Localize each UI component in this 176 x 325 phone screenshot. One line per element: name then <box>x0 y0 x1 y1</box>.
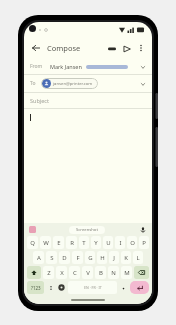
button[interactable]: G <box>85 251 95 264</box>
staticText: C <box>73 269 77 277</box>
button[interactable]: jansen@printer.com <box>41 78 98 89</box>
staticText: F <box>76 254 80 262</box>
button[interactable]: J <box>109 251 119 264</box>
button[interactable]: Q <box>27 236 38 249</box>
staticText: W <box>43 239 49 247</box>
staticText: X <box>60 269 64 277</box>
button[interactable]: N <box>108 266 119 279</box>
staticText: V <box>86 269 90 277</box>
button[interactable]: Y <box>91 236 101 249</box>
staticText: K <box>124 254 128 262</box>
staticText: Z <box>47 269 51 277</box>
staticText: A <box>37 254 41 262</box>
button[interactable]: X <box>56 266 67 279</box>
staticText: N <box>111 269 116 277</box>
staticText: O <box>130 239 135 247</box>
staticText: Screenshot <box>76 227 98 233</box>
button[interactable]: M <box>121 266 132 279</box>
button[interactable] <box>24 109 152 223</box>
staticText: Q <box>30 239 35 247</box>
staticText: H <box>100 254 105 262</box>
button[interactable]: Comma <box>46 281 55 294</box>
staticText: EN · FR · IT <box>84 285 102 290</box>
staticText: jansen@printer.com <box>53 81 93 87</box>
button[interactable]: Send <box>119 41 134 56</box>
staticText: U <box>106 239 111 247</box>
button[interactable]: Settings <box>57 281 66 294</box>
button[interactable]: W <box>40 236 51 249</box>
button[interactable]: F <box>72 251 83 264</box>
staticText: J <box>113 254 115 262</box>
staticText: Mark Jansen <box>50 63 82 70</box>
staticText: T <box>82 239 86 247</box>
button[interactable]: H <box>97 251 107 264</box>
button[interactable]: I <box>115 236 125 249</box>
button[interactable]: V <box>82 266 93 279</box>
staticText: R <box>70 239 74 247</box>
button[interactable]: P <box>139 236 149 249</box>
staticText: ?123 <box>31 285 41 291</box>
staticText: Subject <box>30 97 49 104</box>
button[interactable]: Voice input <box>138 225 147 234</box>
button[interactable]: D <box>59 251 70 264</box>
button[interactable]: Space <box>68 281 117 294</box>
button[interactable]: C <box>69 266 80 279</box>
button[interactable]: To <box>24 75 152 92</box>
button[interactable]: Attach file <box>104 41 119 56</box>
button[interactable]: Backspace <box>134 266 149 279</box>
staticText: D <box>62 254 67 262</box>
button[interactable]: Shift <box>27 266 41 279</box>
button[interactable]: O <box>127 236 137 249</box>
staticText: M <box>124 269 130 277</box>
button[interactable]: E <box>53 236 64 249</box>
staticText: To <box>30 80 36 87</box>
button[interactable]: Enter <box>130 281 149 294</box>
staticText: E <box>57 239 61 247</box>
button[interactable]: R <box>66 236 77 249</box>
button[interactable]: A <box>33 251 44 264</box>
button[interactable]: From <box>24 59 152 74</box>
staticText: Y <box>94 239 98 247</box>
button[interactable]: T <box>79 236 89 249</box>
staticText: S <box>50 254 54 262</box>
button[interactable]: Back <box>28 40 44 56</box>
staticText: G <box>88 254 93 262</box>
button[interactable]: U <box>103 236 113 249</box>
button[interactable]: ?123 <box>27 281 44 294</box>
button[interactable]: S <box>46 251 57 264</box>
button[interactable]: Screenshot <box>69 226 105 234</box>
button[interactable]: Subject <box>24 93 152 108</box>
button[interactable]: L <box>133 251 143 264</box>
staticText: P <box>142 239 146 247</box>
button[interactable]: Period <box>119 281 128 294</box>
button[interactable]: Gboard menu <box>29 226 36 233</box>
staticText: L <box>136 254 140 262</box>
staticText: From <box>30 63 43 70</box>
button[interactable]: B <box>95 266 106 279</box>
button[interactable]: Z <box>43 266 54 279</box>
button[interactable]: More options <box>134 41 148 55</box>
staticText: B <box>99 269 103 277</box>
staticText: Compose <box>47 43 81 53</box>
staticText: I <box>119 239 122 247</box>
button[interactable]: K <box>121 251 131 264</box>
